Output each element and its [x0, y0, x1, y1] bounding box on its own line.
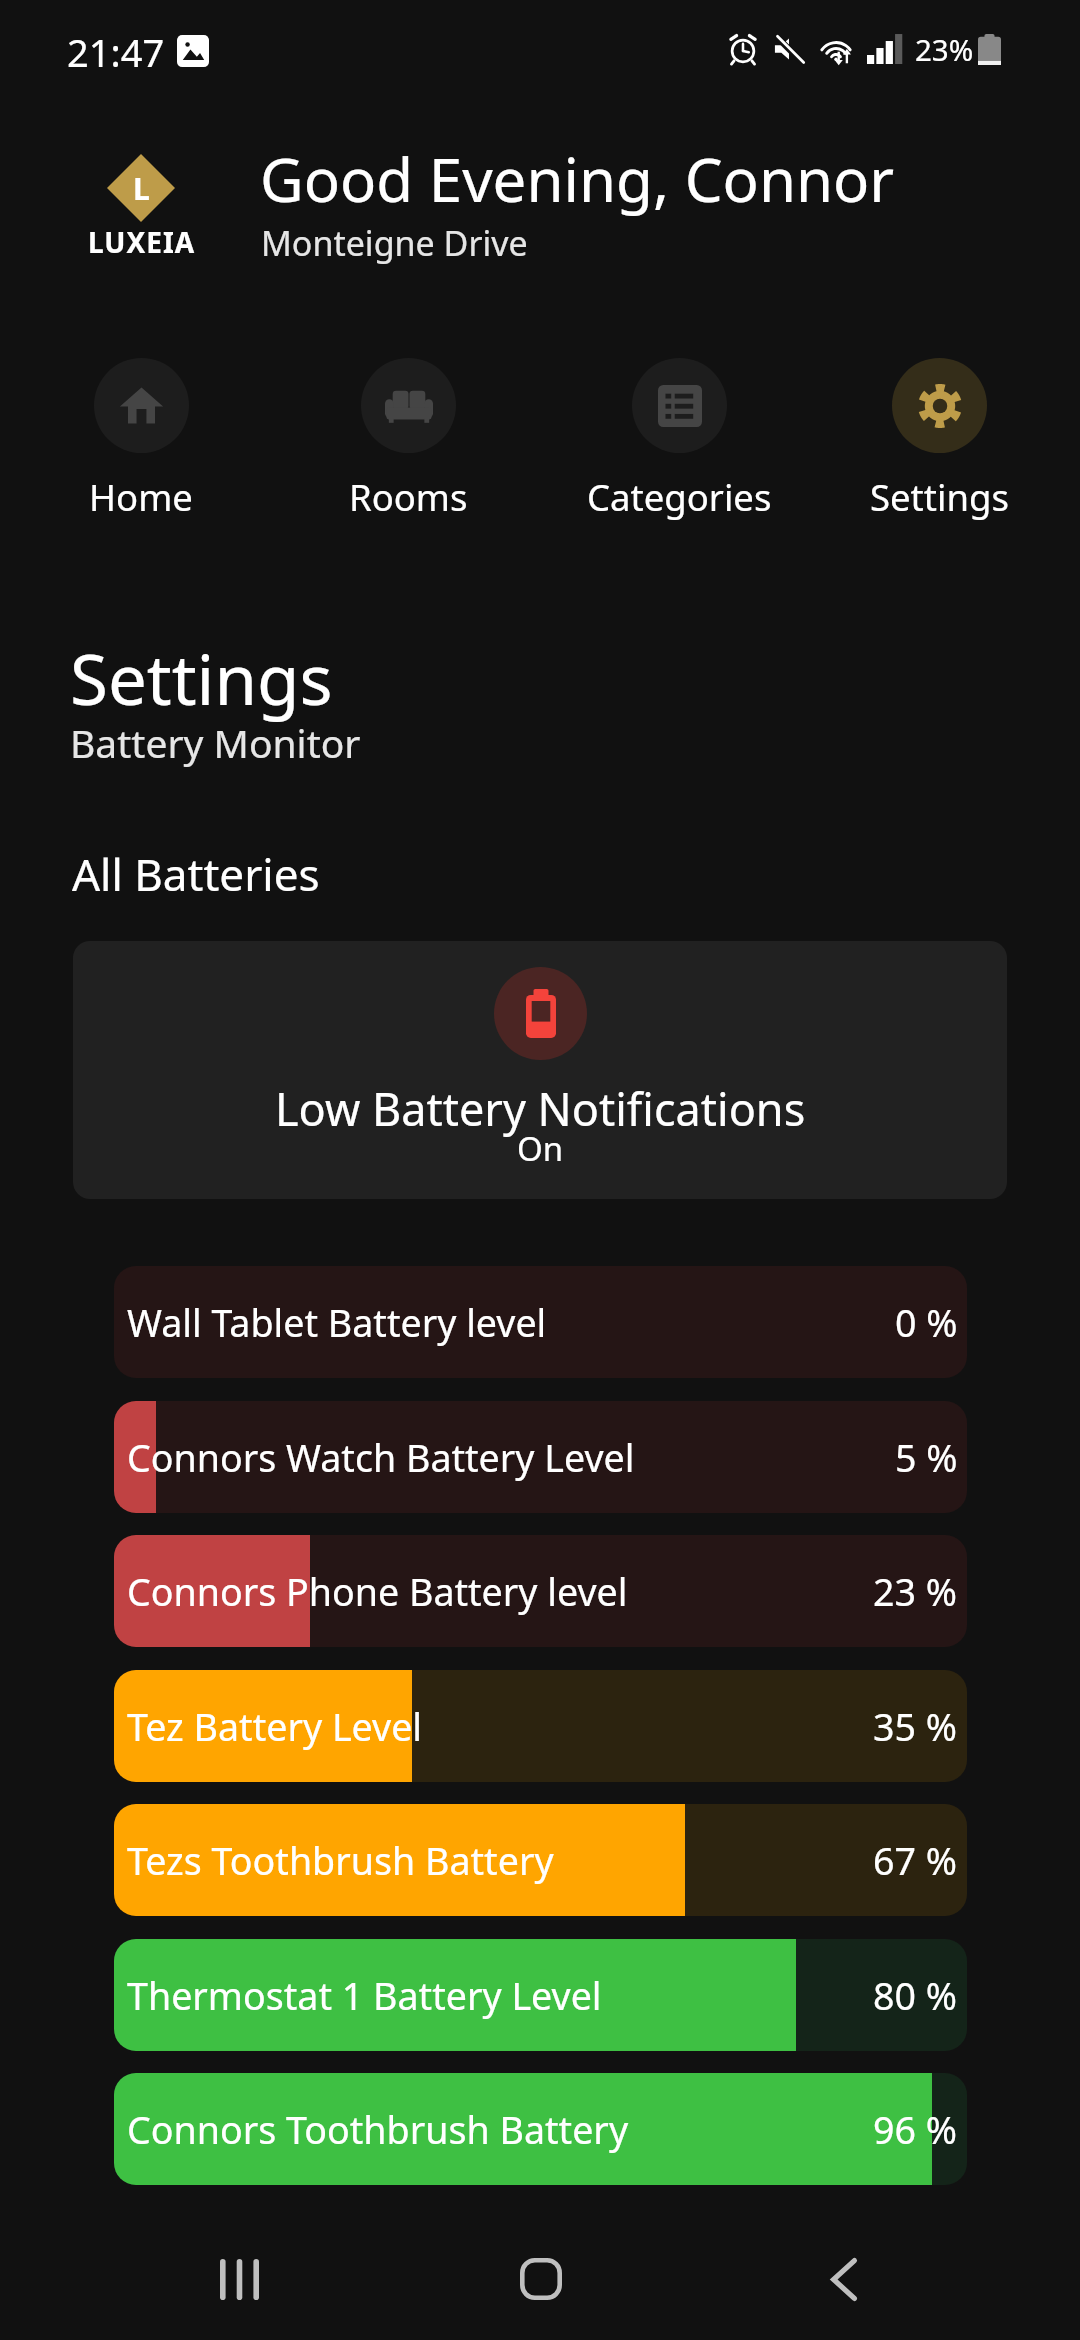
button[interactable]: Tez Battery Level: [114, 1670, 967, 1782]
staticText: 67 %: [873, 1835, 958, 1886]
button[interactable]: Low Battery Notifications: [73, 941, 1007, 1199]
button[interactable]: Back: [764, 2199, 924, 2340]
button[interactable]: Thermostat 1 Battery Level: [114, 1939, 967, 2051]
staticText: L: [133, 168, 150, 209]
staticText: Low Battery Notifications: [275, 1078, 806, 1139]
staticText: Connors Toothbrush Battery: [127, 2104, 629, 2155]
staticText: 21:47: [67, 26, 165, 78]
button[interactable]: Recent apps: [159, 2199, 319, 2340]
staticText: 80 %: [873, 1970, 958, 2021]
staticText: On: [517, 1126, 564, 1171]
staticText: Settings: [870, 472, 1009, 522]
staticText: 0 %: [895, 1297, 958, 1348]
staticText: Categories: [587, 472, 772, 522]
staticText: Settings: [70, 631, 333, 725]
staticText: LUXEIA: [88, 223, 196, 261]
staticText: Battery Monitor: [70, 716, 361, 769]
staticText: Thermostat 1 Battery Level: [127, 1970, 602, 2021]
staticText: 35 %: [873, 1701, 958, 1752]
button[interactable]: Home: [11, 358, 271, 523]
button[interactable]: Connors Watch Battery Level: [114, 1401, 967, 1513]
button[interactable]: Connors Toothbrush Battery: [114, 2073, 967, 2185]
staticText: 23 %: [873, 1566, 958, 1617]
staticText: Home: [89, 472, 193, 522]
staticText: Connors Phone Battery level: [127, 1566, 628, 1617]
staticText: Wall Tablet Battery level: [127, 1297, 547, 1348]
staticText: Tezs Toothbrush Battery: [127, 1835, 554, 1886]
staticText: Monteigne Drive: [261, 220, 528, 266]
button[interactable]: Wall Tablet Battery level: [114, 1266, 967, 1378]
staticText: Rooms: [349, 472, 468, 522]
button[interactable]: Connors Phone Battery level: [114, 1535, 967, 1647]
staticText: Connors Watch Battery Level: [127, 1432, 635, 1483]
button[interactable]: Rooms: [278, 358, 538, 523]
staticText: Good Evening, Connor: [260, 138, 895, 220]
button[interactable]: Categories: [549, 358, 809, 523]
button[interactable]: Home: [461, 2199, 621, 2340]
staticText: 5 %: [895, 1432, 958, 1483]
button[interactable]: Settings: [809, 358, 1069, 523]
staticText: Tez Battery Level: [127, 1701, 423, 1752]
staticText: All Batteries: [72, 844, 320, 904]
button[interactable]: Tezs Toothbrush Battery: [114, 1804, 967, 1916]
staticText: 96 %: [873, 2104, 958, 2155]
staticText: 23%: [915, 29, 974, 69]
